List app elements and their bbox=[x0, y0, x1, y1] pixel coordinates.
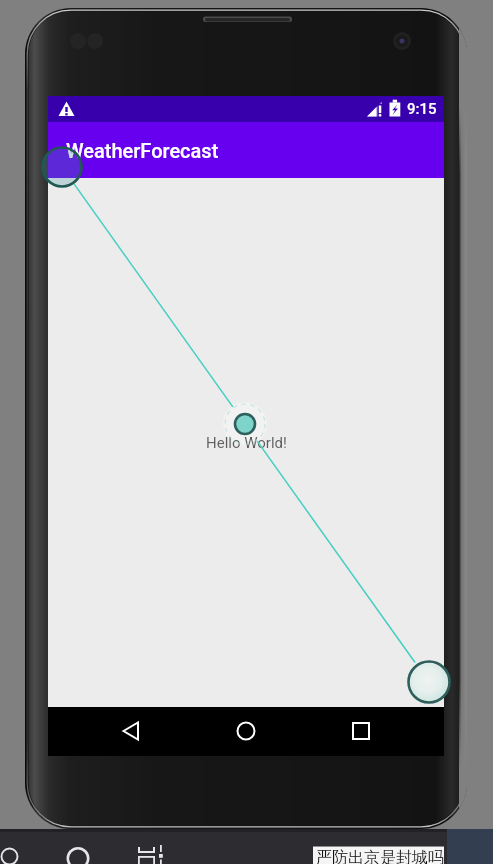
button[interactable]: Search bbox=[60, 838, 94, 864]
button[interactable]: Hello World! bbox=[206, 434, 287, 452]
button[interactable]: Home bbox=[225, 710, 267, 752]
button[interactable]: Back bbox=[110, 710, 152, 752]
button[interactable]: Recents bbox=[340, 710, 382, 752]
staticText: WeatherForecast bbox=[66, 139, 219, 162]
button[interactable]: WeatherForecast bbox=[48, 122, 444, 178]
button[interactable]: Task View bbox=[130, 838, 164, 864]
staticText: 严防出京是封城吗 bbox=[316, 848, 444, 864]
button[interactable]: Start bbox=[0, 838, 34, 864]
staticText: 9:15 bbox=[407, 100, 437, 118]
